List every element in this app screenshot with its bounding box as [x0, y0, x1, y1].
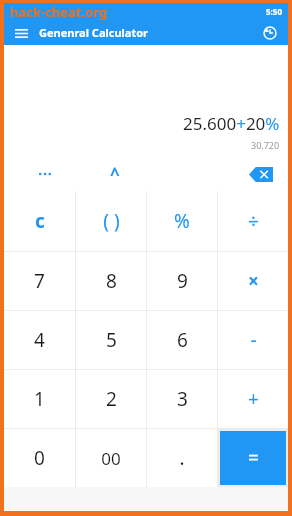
staticText: 3: [177, 386, 188, 412]
staticText: +: [248, 386, 259, 412]
button[interactable]: 4: [4, 311, 75, 369]
button[interactable]: 8: [76, 252, 146, 310]
button[interactable]: -: [218, 311, 288, 369]
button[interactable]: +: [218, 370, 288, 428]
button[interactable]: 9: [147, 252, 217, 310]
staticText: 00: [101, 447, 121, 470]
staticText: %: [174, 208, 190, 234]
button[interactable]: %: [147, 191, 217, 251]
staticText: 2: [106, 386, 117, 412]
staticText: 6: [177, 327, 188, 353]
button[interactable]: 2: [76, 370, 146, 428]
staticText: -: [250, 327, 257, 353]
button[interactable]: 5: [76, 311, 146, 369]
button[interactable]: ÷: [218, 191, 288, 251]
button[interactable]: 00: [76, 429, 146, 487]
staticText: Genenral Calculator: [39, 25, 149, 40]
staticText: 5: [106, 327, 117, 353]
button[interactable]: Backspace: [246, 163, 276, 185]
button[interactable]: Menu: [12, 24, 30, 42]
button[interactable]: 3: [147, 370, 217, 428]
staticText: 30.720: [251, 139, 280, 151]
button[interactable]: 1: [4, 370, 75, 428]
staticText: 8: [106, 268, 117, 294]
staticText: 1: [34, 386, 45, 412]
button[interactable]: =: [220, 431, 286, 485]
staticText: ×: [248, 268, 259, 294]
button[interactable]: ×: [218, 252, 288, 310]
staticText: 4: [34, 327, 45, 353]
staticText: hack-cheat.org: [10, 3, 108, 20]
staticText: ^: [110, 163, 120, 186]
staticText: 5:50: [266, 6, 282, 17]
staticText: c: [35, 208, 45, 234]
button[interactable]: 7: [4, 252, 75, 310]
button[interactable]: 0: [4, 429, 75, 487]
staticText: 9: [177, 268, 188, 294]
staticText: 0: [34, 445, 45, 471]
button[interactable]: 6: [147, 311, 217, 369]
staticText: ÷: [248, 208, 259, 234]
button[interactable]: History: [260, 23, 280, 43]
button[interactable]: ( ): [76, 191, 146, 251]
button[interactable]: More: [30, 159, 60, 189]
staticText: ( ): [103, 208, 120, 234]
staticText: .: [179, 445, 185, 471]
button[interactable]: c: [4, 191, 75, 251]
staticText: 25.600+20%: [183, 112, 280, 135]
button[interactable]: Power: [100, 159, 130, 189]
staticText: 7: [34, 268, 45, 294]
staticText: =: [248, 445, 259, 471]
button[interactable]: .: [147, 429, 217, 487]
